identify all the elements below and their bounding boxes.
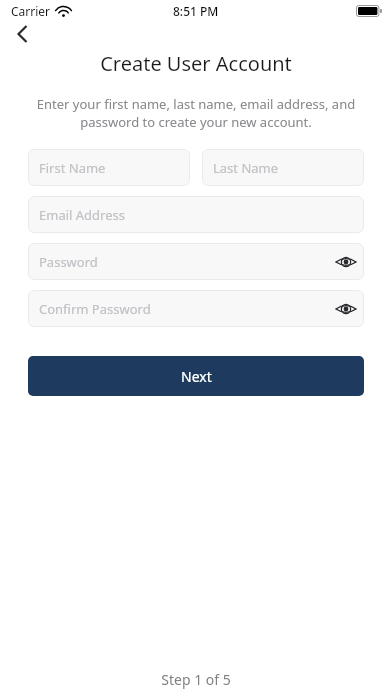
button[interactable]: Confirm Password [28, 290, 364, 327]
staticText: Carrier [11, 3, 51, 19]
staticText: Next [181, 367, 212, 386]
staticText: Password [39, 253, 98, 271]
staticText: Confirm Password [39, 300, 151, 318]
staticText: First Name [39, 159, 106, 177]
button[interactable]: Back [0, 22, 46, 46]
button[interactable]: Show password [328, 243, 364, 280]
button[interactable]: Last Name [202, 149, 364, 186]
button[interactable]: First Name [28, 149, 190, 186]
button[interactable]: Email Address [28, 196, 364, 233]
staticText: 8:51 PM [173, 3, 219, 19]
staticText: Create User Account [0, 50, 392, 77]
button[interactable]: Password [28, 243, 364, 280]
button[interactable]: Show confirm password [328, 290, 364, 327]
staticText: Enter your first name, last name, email … [22, 95, 370, 131]
staticText: Email Address [39, 206, 125, 224]
staticText: Step 1 of 5 [0, 670, 392, 689]
staticText: Last Name [213, 159, 279, 177]
button[interactable]: Next [28, 356, 364, 396]
